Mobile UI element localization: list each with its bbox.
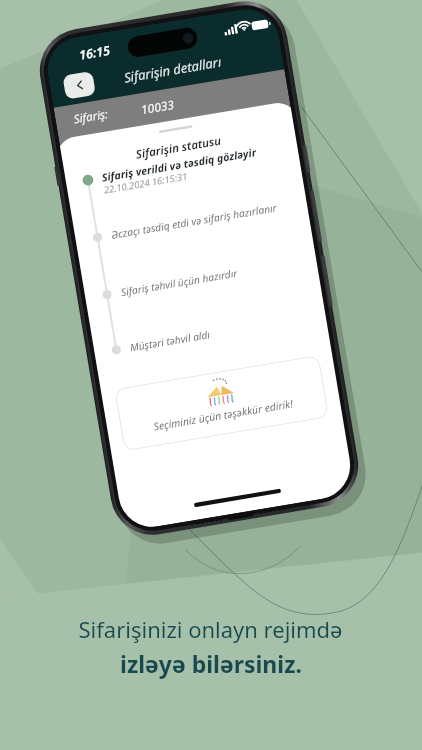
button[interactable]: Track your order online promo xyxy=(0,0,422,750)
